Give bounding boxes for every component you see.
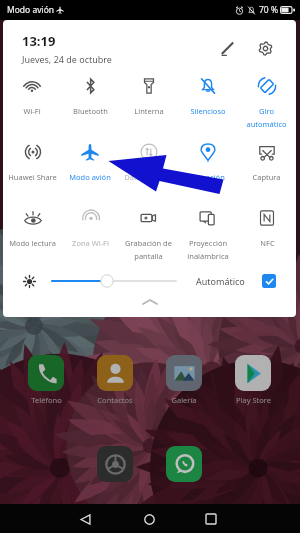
- staticText: NFC: [260, 238, 275, 248]
- button[interactable]: WhatsApp: [166, 446, 202, 482]
- button[interactable]: Modo lectura: [3, 202, 61, 268]
- staticText: Wi-Fi: [23, 106, 41, 116]
- button[interactable]: Ubicación: [178, 136, 237, 202]
- button[interactable]: Automático: [196, 275, 245, 287]
- button[interactable]: Modo avión: [61, 136, 119, 202]
- staticText: Linterna: [134, 106, 164, 116]
- button[interactable]: Bluetooth: [61, 70, 119, 136]
- staticText: Grabación de pantalla: [125, 238, 172, 261]
- staticText: Huawei Share: [8, 172, 57, 182]
- button[interactable]: Huawei Share: [3, 136, 61, 202]
- staticText: Silencioso: [190, 106, 226, 116]
- button[interactable]: Contactos: [97, 355, 133, 405]
- staticText: Giro automático: [246, 106, 287, 129]
- button[interactable]: Control de brillo: [47, 273, 179, 289]
- button[interactable]: Cámara: [97, 446, 133, 482]
- button[interactable]: Inicio: [136, 506, 162, 532]
- staticText: Datos móviles: [124, 172, 174, 182]
- button[interactable]: Grabación de pantalla: [119, 202, 178, 268]
- button[interactable]: Atrás: [72, 506, 98, 532]
- staticText: Proyección inalámbrica: [187, 238, 229, 261]
- button[interactable]: Giro automático: [237, 70, 296, 136]
- staticText: 13:19: [22, 32, 56, 50]
- staticText: Contactos: [97, 395, 133, 405]
- staticText: Automático: [196, 275, 245, 287]
- staticText: Modo avión: [7, 4, 55, 16]
- button[interactable]: Recientes: [198, 506, 224, 532]
- staticText: Zona Wi-Fi: [72, 238, 109, 248]
- staticText: Play Store: [236, 395, 271, 405]
- button[interactable]: Proyección inalámbrica: [178, 202, 237, 268]
- staticText: Modo lectura: [9, 238, 56, 248]
- staticText: Ubicación: [190, 172, 225, 182]
- button[interactable]: Brillo automático: [262, 274, 276, 288]
- button[interactable]: Brillo: [21, 273, 37, 289]
- staticText: Teléfono: [31, 395, 62, 405]
- button[interactable]: Contraer: [3, 296, 296, 308]
- button[interactable]: Linterna: [119, 70, 178, 136]
- staticText: Galería: [171, 395, 197, 405]
- button[interactable]: Galería: [166, 355, 202, 405]
- button[interactable]: Captura: [237, 136, 296, 202]
- button[interactable]: Teléfono: [28, 355, 64, 405]
- button[interactable]: Ajustes: [254, 37, 276, 59]
- staticText: Jueves, 24 de octubre: [22, 53, 112, 65]
- button[interactable]: Wi-Fi: [3, 70, 61, 136]
- staticText: Captura: [252, 172, 281, 182]
- button[interactable]: Silencioso: [178, 70, 237, 136]
- button[interactable]: Zona Wi-Fi: [61, 202, 119, 268]
- staticText: 70 %: [259, 4, 278, 16]
- button[interactable]: Editar: [216, 37, 238, 59]
- staticText: Bluetooth: [73, 106, 108, 116]
- staticText: Modo avión: [69, 172, 111, 182]
- button[interactable]: Play Store: [235, 355, 271, 405]
- button[interactable]: NFC: [237, 202, 296, 268]
- button[interactable]: Datos móviles: [119, 136, 178, 202]
